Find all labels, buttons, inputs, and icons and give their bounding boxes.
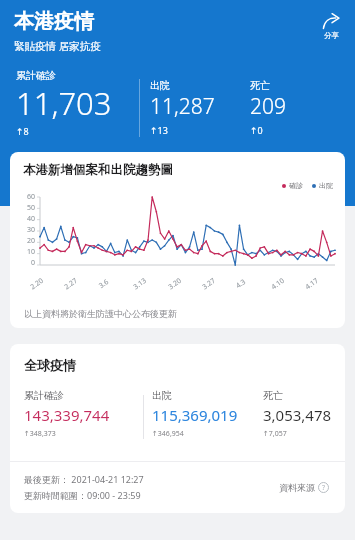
staticText: 本港新增個案和出院趨勢圖 — [23, 162, 173, 178]
staticText: 2.20 — [28, 276, 46, 292]
staticText: 3.13 — [131, 276, 149, 292]
staticText: 死亡 — [263, 389, 283, 402]
staticText: 3.20 — [166, 276, 184, 292]
staticText: 209 — [250, 92, 286, 121]
staticText: ↑346,954 — [152, 429, 184, 439]
staticText: 累計確診 — [24, 389, 64, 402]
staticText: 更新時間範圍：09:00 - 23:59 — [24, 489, 141, 501]
staticText: 資料來源 — [279, 482, 315, 493]
staticText: 死亡 — [250, 79, 270, 92]
staticText: 50 — [27, 203, 36, 213]
button[interactable]: 全球疫情 — [10, 344, 345, 513]
staticText: 10 — [27, 247, 36, 257]
staticText: ↑348,373 — [24, 429, 56, 439]
staticText: 出院 — [152, 389, 172, 402]
staticText: ? — [322, 483, 326, 493]
staticText: 3,053,478 — [263, 405, 332, 425]
staticText: ↑13 — [150, 124, 168, 136]
staticText: 30 — [27, 225, 36, 235]
staticText: 11,703 — [16, 82, 112, 124]
staticText: 最後更新： 2021-04-21 12:27 — [24, 473, 144, 485]
staticText: 緊貼疫情 居家抗疫 — [14, 39, 101, 53]
staticText: 0 — [31, 258, 36, 268]
staticText: 出院 — [150, 79, 170, 92]
staticText: 11,287 — [150, 92, 215, 121]
staticText: 分享 — [324, 31, 339, 40]
staticText: 2.27 — [62, 276, 80, 292]
staticText: 全球疫情 — [24, 357, 76, 373]
staticText: 累計確診 — [16, 69, 56, 82]
button[interactable]: 資料來源 — [277, 480, 331, 495]
staticText: ↑7,057 — [263, 429, 287, 439]
staticText: 4.3 — [234, 277, 248, 291]
staticText: 本港疫情 — [14, 9, 94, 34]
staticText: ↑0 — [250, 124, 263, 136]
staticText: 確診 — [289, 181, 303, 190]
staticText: ↑8 — [16, 125, 29, 137]
staticText: 60 — [27, 192, 36, 202]
staticText: 以上資料將於衛生防護中心公布後更新 — [24, 308, 177, 319]
staticText: 出院 — [319, 181, 333, 190]
button[interactable]: 本港新增個案和出院趨勢圖 — [10, 152, 345, 328]
button[interactable]: 分享 — [315, 10, 347, 43]
staticText: 40 — [27, 214, 36, 224]
staticText: 3.6 — [97, 277, 111, 291]
staticText: 4.17 — [303, 276, 321, 292]
staticText: 20 — [27, 236, 36, 246]
staticText: 115,369,019 — [152, 405, 238, 425]
staticText: 3.27 — [200, 276, 218, 292]
staticText: 143,339,744 — [24, 405, 110, 425]
staticText: 4.10 — [269, 276, 287, 292]
